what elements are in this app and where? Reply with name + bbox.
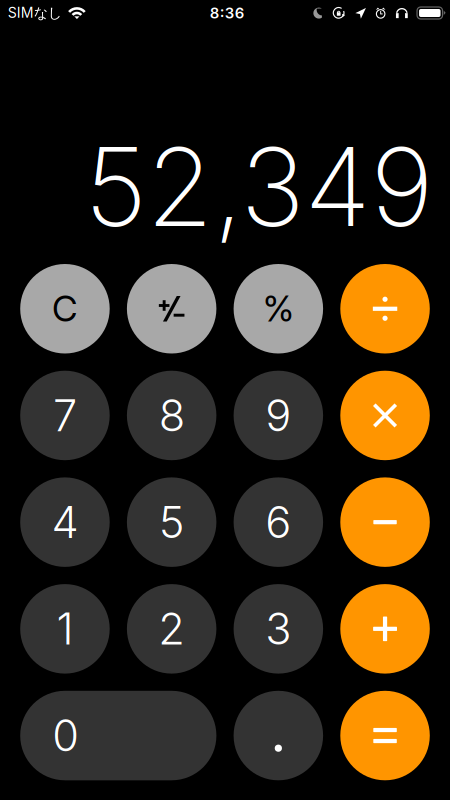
- button[interactable]: 5: [127, 477, 216, 567]
- staticText: 8:36: [210, 4, 245, 22]
- staticText: SIMなし: [8, 4, 62, 22]
- button[interactable]: %: [234, 264, 323, 353]
- staticText: 2: [158, 603, 185, 655]
- button[interactable]: [340, 264, 430, 353]
- staticText: C: [52, 287, 78, 330]
- button[interactable]: [340, 584, 430, 674]
- button[interactable]: 2: [127, 584, 216, 674]
- staticText: 9: [265, 389, 291, 442]
- button[interactable]: 9: [234, 371, 323, 460]
- button[interactable]: [127, 264, 216, 353]
- staticText: 6: [265, 496, 291, 548]
- button[interactable]: [340, 371, 430, 460]
- button[interactable]: 8: [127, 371, 216, 460]
- staticText: 3: [265, 603, 291, 655]
- staticText: %: [263, 287, 294, 330]
- button[interactable]: [340, 477, 430, 567]
- button[interactable]: 0: [20, 691, 216, 780]
- button[interactable]: C: [20, 264, 110, 353]
- button[interactable]: 7: [20, 371, 110, 460]
- staticText: 4: [51, 496, 78, 548]
- button[interactable]: [234, 691, 323, 780]
- staticText: 5: [159, 496, 185, 548]
- staticText: 52,349: [84, 121, 433, 252]
- button[interactable]: 6: [234, 477, 323, 567]
- staticText: 7: [53, 389, 77, 442]
- button[interactable]: 1: [20, 584, 110, 674]
- staticText: 8: [159, 389, 185, 442]
- staticText: 0: [52, 709, 79, 762]
- staticText: 1: [56, 603, 73, 655]
- button[interactable]: 3: [234, 584, 323, 674]
- button[interactable]: 4: [20, 477, 110, 567]
- button[interactable]: [340, 691, 430, 780]
